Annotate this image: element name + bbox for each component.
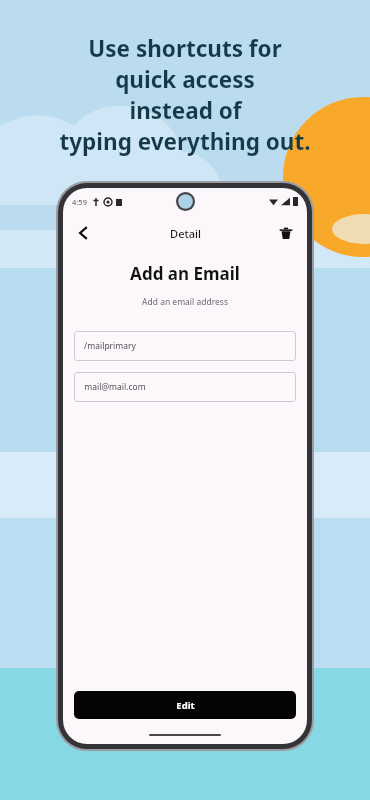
button[interactable]: Back	[68, 217, 100, 249]
button[interactable]: /mailprimary	[74, 331, 296, 361]
staticText: Edit	[176, 699, 195, 712]
staticText: /mailprimary	[84, 340, 136, 352]
button[interactable]: Edit	[74, 691, 296, 719]
staticText: 4:59	[72, 197, 87, 207]
staticText: Add an Email	[130, 262, 240, 285]
staticText: Use shortcuts for	[88, 33, 282, 64]
staticText: quick access	[115, 64, 255, 95]
staticText: instead of	[129, 95, 242, 126]
button[interactable]: Delete	[270, 217, 302, 249]
staticText: typing everything out.	[59, 126, 311, 157]
staticText: mail@mail.com	[84, 381, 146, 393]
button[interactable]: mail@mail.com	[74, 372, 296, 402]
staticText: Detail	[170, 226, 201, 241]
staticText: Add an email address	[142, 296, 228, 308]
